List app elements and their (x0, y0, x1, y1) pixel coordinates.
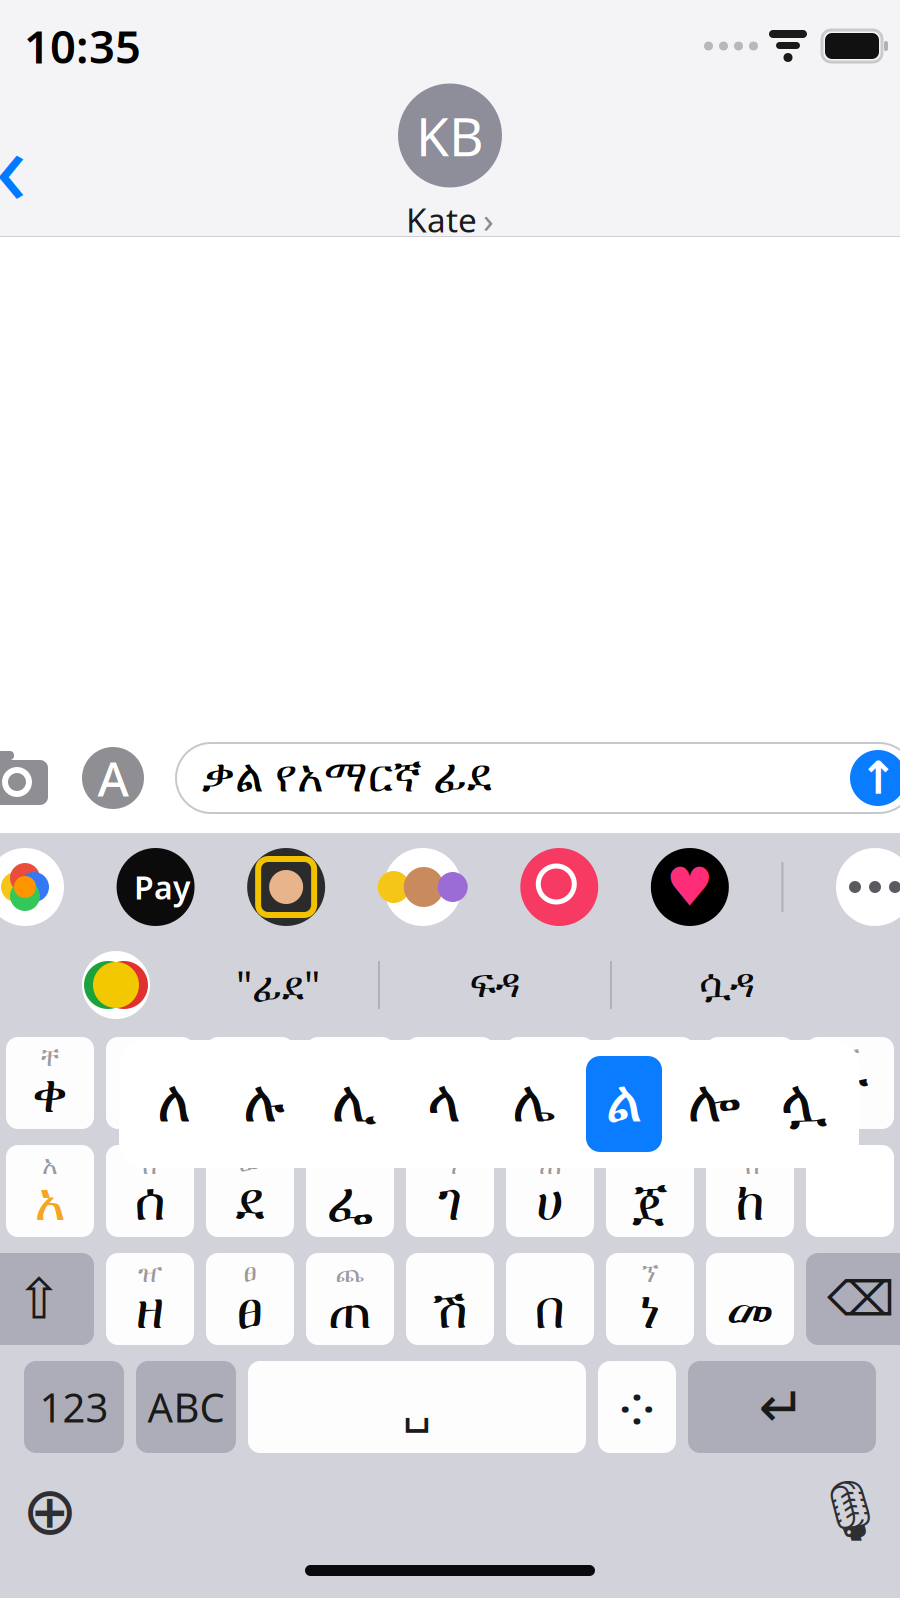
button[interactable]: Space (248, 1361, 586, 1453)
button[interactable]: 123 (24, 1361, 124, 1453)
button[interactable]: ኸ (706, 1145, 794, 1237)
button[interactable]: ጨ (306, 1253, 394, 1345)
staticText: ደ (235, 1178, 264, 1230)
button[interactable]: ሉ (106, 1037, 194, 1129)
staticText: እ (334, 1070, 366, 1122)
button[interactable]: KB (398, 80, 502, 190)
staticText: ↵ (758, 1375, 805, 1439)
staticText: Pay (134, 866, 191, 908)
staticText: ጀ (632, 1178, 668, 1230)
button[interactable]: ሷዳ (612, 945, 842, 1025)
staticText: ዩ (643, 1045, 656, 1071)
button[interactable]: Memoji (247, 848, 325, 926)
button[interactable]: Camera (0, 741, 54, 815)
button[interactable]: ሉ (219, 1049, 309, 1159)
staticText: ኅ (442, 1153, 457, 1179)
button[interactable]: ሎ (669, 1049, 759, 1159)
staticText: ‹ (0, 95, 27, 233)
button[interactable]: ሟ (206, 1037, 294, 1129)
staticText: ⊕ (22, 1473, 78, 1549)
button[interactable]: Apps (76, 741, 150, 815)
button[interactable]: ፀ (206, 1253, 294, 1345)
button[interactable]: Shift (0, 1253, 94, 1345)
button[interactable]: ለ (129, 1049, 219, 1159)
button[interactable]: Switch keyboard (10, 1471, 90, 1551)
staticText: ↑ (859, 752, 897, 804)
staticText: ኡ (730, 1070, 769, 1122)
staticText: 123 (39, 1380, 108, 1433)
button[interactable]: Send (850, 750, 900, 806)
staticText: ሸ (141, 1153, 158, 1179)
staticText: 🎙 (813, 1477, 887, 1544)
staticText: ፐ (831, 1070, 869, 1122)
button[interactable]: ል (579, 1049, 669, 1159)
staticText: መ (226, 1070, 274, 1122)
button[interactable]: Kate (406, 196, 494, 242)
button[interactable]: ሌ (489, 1049, 579, 1159)
staticText: ⌫ (827, 1272, 895, 1326)
staticText: ቀ (32, 1070, 68, 1122)
button[interactable]: "ፊደ" (178, 945, 378, 1025)
button[interactable]: ሊ (309, 1049, 399, 1159)
button[interactable]: Punctuation (598, 1361, 676, 1453)
button[interactable]: ፑ (806, 1037, 894, 1129)
staticText: ሠ (239, 1153, 261, 1179)
staticText: ኸ (740, 1153, 760, 1179)
button[interactable]: Dictation (810, 1471, 890, 1551)
button[interactable]: Back (0, 119, 56, 209)
button[interactable]: Return (688, 1361, 876, 1453)
staticText: ♥ (666, 857, 714, 917)
staticText: ሷዳ (699, 965, 755, 1004)
staticText: ሐ (539, 1153, 560, 1179)
button[interactable]: ሠ (206, 1145, 294, 1237)
button[interactable]: Language (82, 951, 150, 1019)
button[interactable] (606, 1145, 694, 1237)
button[interactable]: Delete (806, 1253, 900, 1345)
button[interactable]: ዩ (606, 1037, 694, 1129)
staticText: ል (605, 1075, 642, 1133)
button[interactable]: Fitness (651, 848, 729, 926)
staticText: Kate (406, 197, 477, 242)
button[interactable]: Apple Pay (117, 848, 195, 926)
staticText: ፀ (236, 1286, 263, 1338)
button[interactable] (306, 1145, 394, 1237)
staticText: ኘ (641, 1261, 658, 1287)
staticText: ፀ (243, 1261, 256, 1287)
button[interactable]: ሐ (506, 1145, 594, 1237)
button[interactable]: Photos (0, 848, 64, 926)
staticText: ጨ (335, 1261, 364, 1287)
button[interactable]: ላ (399, 1049, 489, 1159)
button[interactable]: ሸ (106, 1145, 194, 1237)
staticText: ሊ (331, 1075, 376, 1133)
button[interactable]: ሏ (759, 1049, 849, 1159)
button[interactable]: Image Search (520, 848, 598, 926)
button[interactable] (706, 1253, 794, 1345)
button[interactable]: ኡ (706, 1037, 794, 1129)
button[interactable]: ፍዳ (380, 945, 610, 1025)
button[interactable] (506, 1253, 594, 1345)
button[interactable]: ኘ (606, 1253, 694, 1345)
staticText: አ (42, 1153, 58, 1179)
staticText: ሉ (243, 1075, 285, 1133)
staticText: ሎ (687, 1075, 740, 1133)
button[interactable]: አ (6, 1145, 94, 1237)
staticText: ለ (157, 1075, 191, 1133)
button[interactable] (406, 1253, 494, 1345)
button[interactable]: ቷ (506, 1037, 594, 1129)
button[interactable]: ዠ (106, 1253, 194, 1345)
staticText: ላ (427, 1075, 461, 1133)
staticText: ␣ (402, 1381, 431, 1433)
button[interactable]: ABC (136, 1361, 236, 1453)
button[interactable]: ቸ (6, 1037, 94, 1129)
staticText: ዠ (138, 1261, 162, 1287)
button[interactable]: Stickers (378, 848, 468, 926)
button[interactable]: ሯ (406, 1037, 494, 1129)
button[interactable]: ኧ (306, 1037, 394, 1129)
button[interactable]: More (836, 848, 900, 926)
button[interactable]: ኅ (406, 1145, 494, 1237)
